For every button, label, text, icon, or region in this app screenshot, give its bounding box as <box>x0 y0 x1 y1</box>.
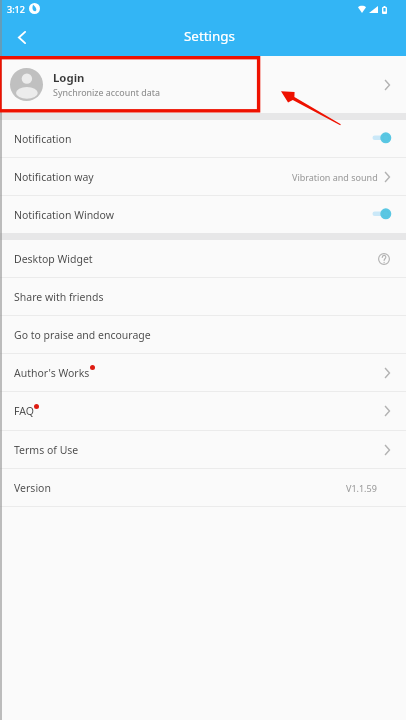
button[interactable]: Share with friends <box>0 278 406 315</box>
staticText: Synchronize account data <box>53 86 160 98</box>
staticText: Terms of Use <box>14 443 79 457</box>
staticText: Share with friends <box>14 290 104 304</box>
staticText: Vibration and sound <box>292 171 378 183</box>
button[interactable]: Login <box>0 56 406 113</box>
button[interactable]: FAQ <box>0 392 406 430</box>
staticText: Author's Works <box>14 366 90 380</box>
button[interactable]: Go to praise and encourage <box>0 316 406 353</box>
staticText: Go to praise and encourage <box>14 328 151 342</box>
button[interactable]: Author's Works <box>0 354 406 391</box>
staticText: Notification <box>14 132 72 146</box>
staticText: 3:12 <box>7 3 25 15</box>
button[interactable]: Notification Window <box>0 196 406 233</box>
staticText: FAQ <box>14 404 34 418</box>
button[interactable]: Notification <box>0 120 406 157</box>
staticText: Notification Window <box>14 208 114 222</box>
button[interactable]: Desktop Widget <box>0 240 406 277</box>
staticText: Settings <box>184 27 235 45</box>
staticText: Version <box>14 481 51 495</box>
button[interactable]: Version <box>0 469 406 506</box>
button[interactable]: Notification way <box>0 158 406 195</box>
staticText: Login <box>53 70 85 86</box>
staticText: V1.1.59 <box>346 482 377 494</box>
staticText: Desktop Widget <box>14 252 93 266</box>
button[interactable]: Terms of Use <box>0 431 406 468</box>
button[interactable]: Back <box>0 19 40 56</box>
staticText: Notification way <box>14 170 94 184</box>
